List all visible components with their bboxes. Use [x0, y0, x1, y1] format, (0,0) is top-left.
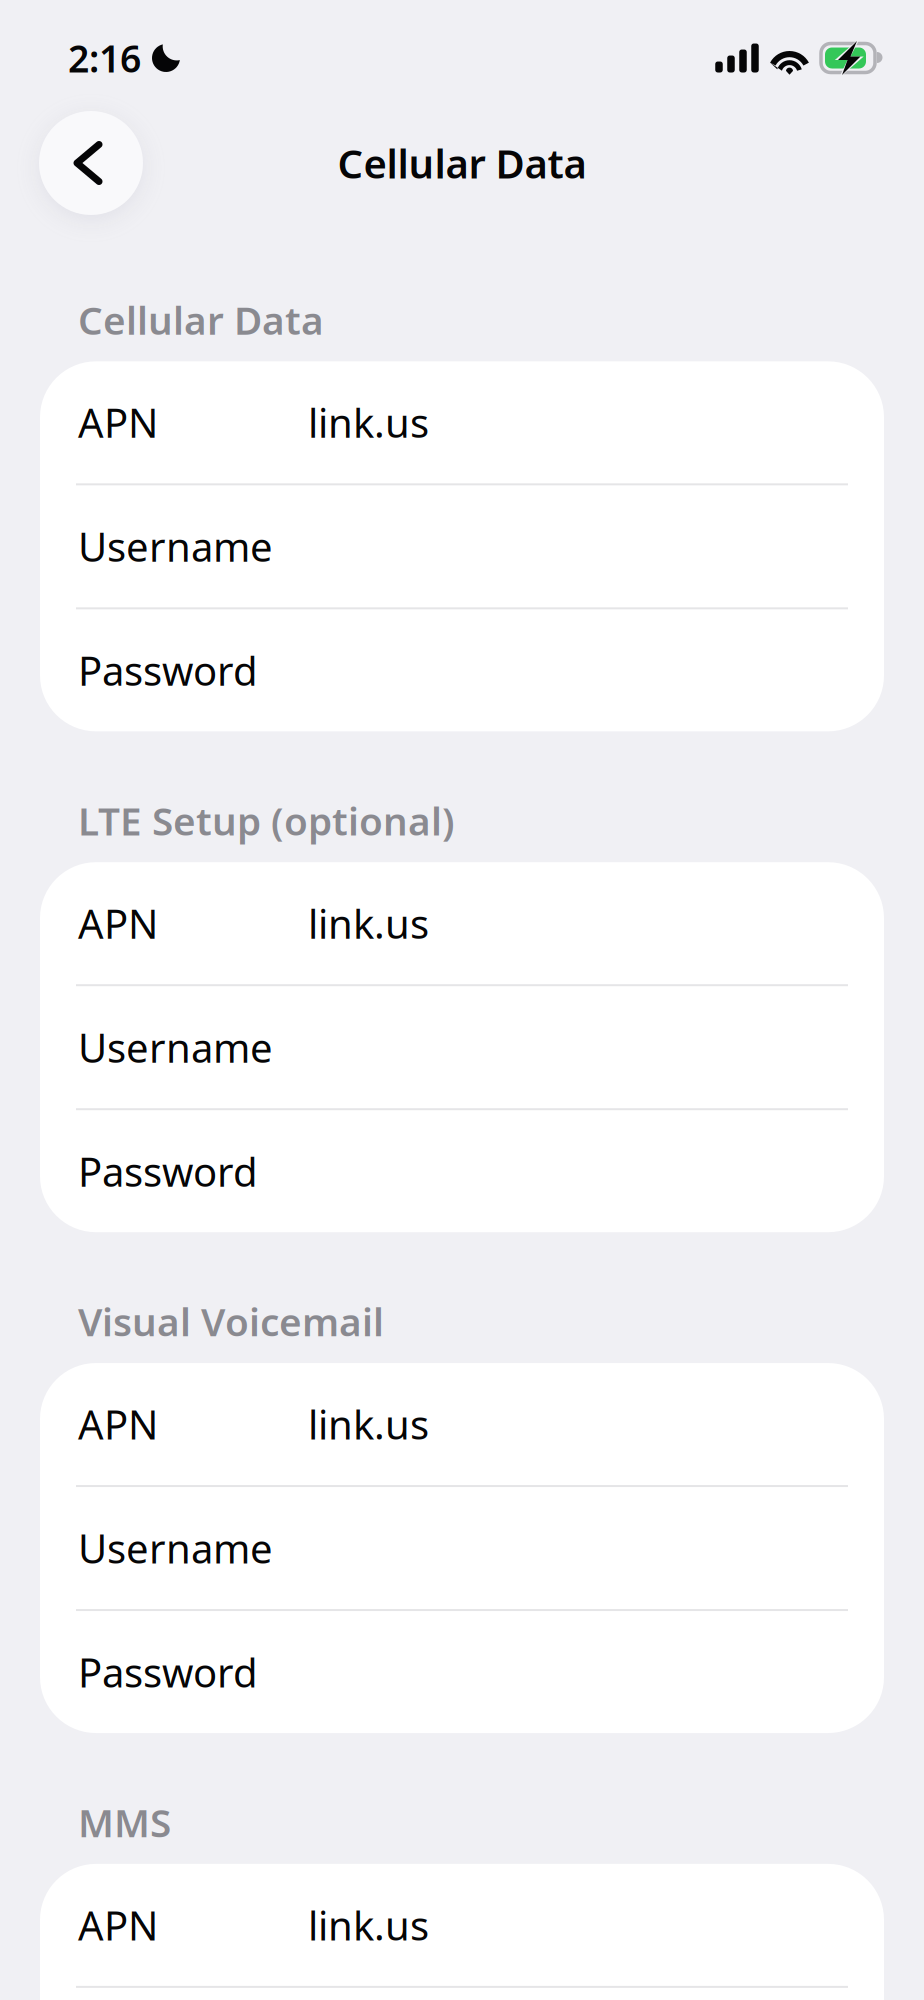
staticText: Username: [78, 1521, 273, 1575]
staticText: APN: [78, 1397, 158, 1451]
staticText: link.us: [308, 396, 429, 449]
staticText: Password: [78, 644, 258, 697]
staticText: Username: [78, 1021, 273, 1074]
button[interactable]: APN: [40, 862, 884, 984]
button[interactable]: Password: [40, 1611, 884, 1733]
button[interactable]: APN: [40, 361, 884, 483]
staticText: Visual Voicemail: [78, 1296, 384, 1347]
button[interactable]: Username: [40, 986, 884, 1108]
button[interactable]: Username: [40, 485, 884, 607]
staticText: APN: [78, 897, 158, 950]
staticText: Username: [78, 520, 273, 573]
button[interactable]: Password: [40, 609, 884, 731]
button[interactable]: Password: [40, 1110, 884, 1232]
staticText: APN: [78, 396, 158, 449]
staticText: Password: [78, 1145, 258, 1198]
staticText: APN: [78, 1898, 158, 1951]
staticText: 2:16: [68, 33, 141, 83]
staticText: Cellular Data: [78, 294, 324, 345]
button[interactable]: Username: [40, 1487, 884, 1609]
staticText: Cellular Data: [337, 136, 586, 189]
staticText: link.us: [308, 1898, 429, 1951]
staticText: MMS: [78, 1796, 171, 1848]
staticText: link.us: [308, 1397, 429, 1451]
button[interactable]: Back: [39, 111, 143, 215]
button[interactable]: APN: [40, 1864, 884, 1986]
staticText: LTE Setup (optional): [78, 795, 455, 846]
staticText: link.us: [308, 897, 429, 950]
staticText: Password: [78, 1645, 258, 1699]
button[interactable]: APN: [40, 1363, 884, 1485]
